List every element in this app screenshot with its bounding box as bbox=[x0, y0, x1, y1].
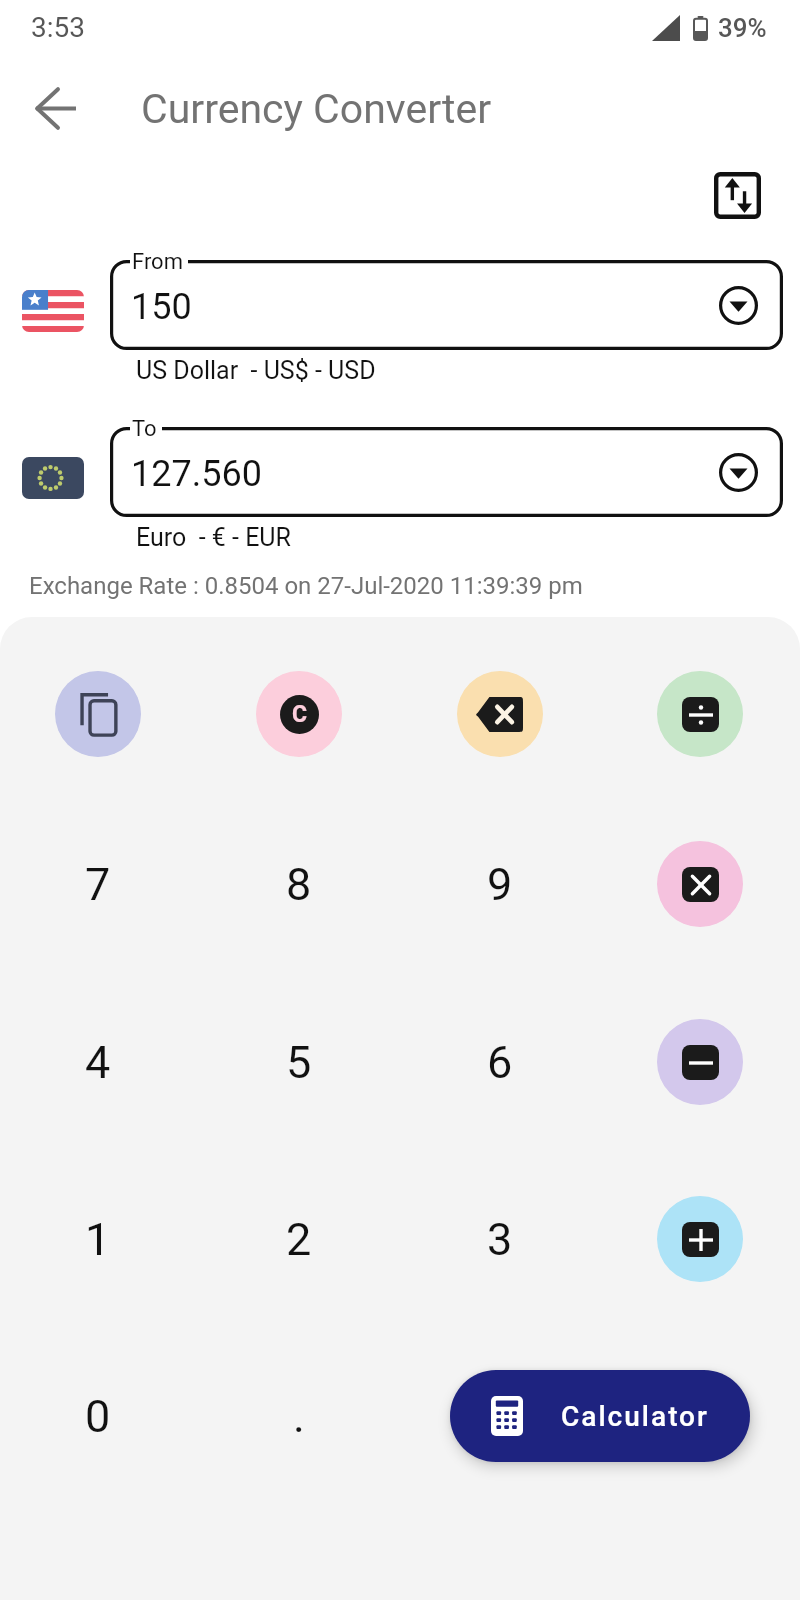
staticText: To bbox=[132, 416, 157, 442]
staticText: 39% bbox=[718, 13, 767, 43]
button[interactable]: Choose currency bbox=[719, 453, 758, 492]
button[interactable]: Swap currencies bbox=[702, 160, 772, 230]
staticText: Exchange Rate : 0.8504 on 27-Jul-2020 11… bbox=[29, 572, 583, 600]
staticText: 3:53 bbox=[31, 11, 85, 44]
button[interactable]: . bbox=[256, 1373, 342, 1459]
staticText: 5 bbox=[286, 1036, 312, 1089]
staticText: From bbox=[132, 249, 183, 275]
button[interactable]: Choose currency bbox=[719, 286, 758, 325]
staticText: 1 bbox=[85, 1213, 111, 1266]
button[interactable]: Back bbox=[21, 74, 89, 142]
staticText: 3 bbox=[487, 1213, 513, 1266]
staticText: 150 bbox=[131, 286, 192, 328]
button[interactable]: 6 bbox=[457, 1019, 543, 1105]
staticText: . bbox=[293, 1390, 305, 1443]
button[interactable]: Backspace bbox=[457, 671, 543, 757]
staticText: Calculator bbox=[561, 1400, 709, 1433]
button[interactable]: Multiply bbox=[657, 841, 743, 927]
staticText: Currency Converter bbox=[141, 85, 492, 133]
button[interactable]: Minus bbox=[657, 1019, 743, 1105]
staticText: 4 bbox=[85, 1036, 111, 1089]
staticText: Euro - € - EUR bbox=[136, 523, 291, 552]
staticText: C bbox=[292, 701, 308, 728]
staticText: 6 bbox=[487, 1036, 513, 1089]
staticText: 2 bbox=[286, 1213, 312, 1266]
button[interactable]: Calculator bbox=[450, 1370, 750, 1462]
button[interactable]: Divide bbox=[657, 671, 743, 757]
button[interactable]: Clear bbox=[256, 671, 342, 757]
button[interactable]: Plus bbox=[657, 1196, 743, 1282]
staticText: 0 bbox=[85, 1390, 111, 1443]
button[interactable]: 127.560 bbox=[110, 427, 783, 517]
button[interactable]: 3 bbox=[457, 1196, 543, 1282]
button[interactable]: 4 bbox=[55, 1019, 141, 1105]
button[interactable]: 0 bbox=[55, 1373, 141, 1459]
staticText: 8 bbox=[286, 858, 312, 911]
button[interactable]: Copy bbox=[55, 671, 141, 757]
button[interactable]: 7 bbox=[55, 841, 141, 927]
button[interactable]: 2 bbox=[256, 1196, 342, 1282]
staticText: 9 bbox=[487, 858, 513, 911]
staticText: US Dollar - US$ - USD bbox=[136, 356, 376, 385]
button[interactable]: 150 bbox=[110, 260, 783, 350]
button[interactable]: 5 bbox=[256, 1019, 342, 1105]
button[interactable]: 8 bbox=[256, 841, 342, 927]
button[interactable]: 9 bbox=[457, 841, 543, 927]
staticText: 127.560 bbox=[131, 453, 262, 495]
staticText: 7 bbox=[85, 858, 111, 911]
button[interactable]: 1 bbox=[55, 1196, 141, 1282]
